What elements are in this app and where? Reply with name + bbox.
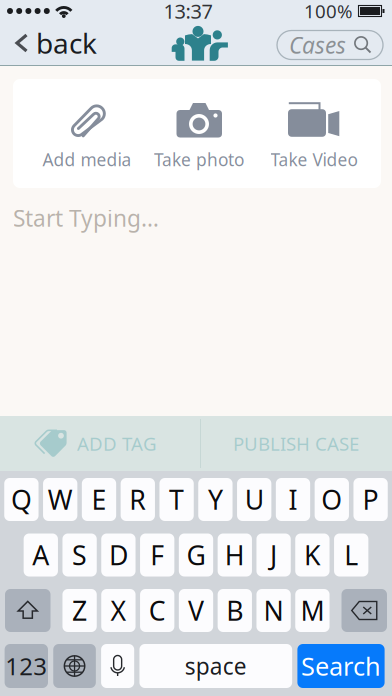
button[interactable]: Take photo xyxy=(161,101,237,169)
button[interactable]: Q xyxy=(4,478,38,521)
staticText: M xyxy=(300,593,324,628)
button[interactable]: Search xyxy=(297,644,385,688)
staticText: D xyxy=(109,537,128,573)
button[interactable]: 123 xyxy=(5,644,48,688)
button[interactable]: V xyxy=(179,589,213,632)
staticText: R xyxy=(129,482,146,517)
button[interactable]: Add media xyxy=(13,101,161,169)
staticText: W xyxy=(48,482,73,517)
button[interactable]: W xyxy=(43,478,77,521)
staticText: X xyxy=(110,593,126,628)
button[interactable]: E xyxy=(82,478,116,521)
button[interactable]: J xyxy=(256,533,291,576)
staticText: Cases xyxy=(289,30,346,60)
staticText: K xyxy=(304,537,321,573)
button[interactable]: G xyxy=(179,533,213,576)
button[interactable]: C xyxy=(140,589,174,632)
staticText: O xyxy=(321,482,342,517)
button[interactable]: Y xyxy=(198,478,232,521)
staticText: A xyxy=(32,537,49,573)
staticText: I xyxy=(288,482,297,517)
staticText: S xyxy=(72,537,87,573)
button[interactable]: O xyxy=(315,478,349,521)
button[interactable]: S xyxy=(62,533,97,576)
button[interactable]: U xyxy=(237,478,271,521)
button[interactable]: A xyxy=(24,533,58,576)
staticText: back xyxy=(36,24,97,62)
button[interactable]: Cases xyxy=(277,30,383,59)
staticText: 123 xyxy=(5,650,47,682)
button[interactable]: D xyxy=(101,533,135,576)
button[interactable]: Delete xyxy=(341,589,387,632)
button[interactable]: M xyxy=(295,589,329,632)
button[interactable]: Z xyxy=(62,589,97,632)
staticText: N xyxy=(264,593,284,628)
staticText: space xyxy=(185,651,247,681)
button[interactable]: P xyxy=(353,478,388,521)
button[interactable]: space xyxy=(139,644,292,688)
staticText: G xyxy=(186,537,205,573)
staticText: Search xyxy=(301,649,381,683)
staticText: J xyxy=(270,537,277,573)
staticText: Take Video xyxy=(270,148,357,171)
button[interactable]: I xyxy=(276,478,310,521)
staticText: V xyxy=(188,593,204,628)
staticText: C xyxy=(149,593,166,628)
staticText: 100% xyxy=(304,0,353,23)
staticText: Take photo xyxy=(154,148,244,171)
staticText: Z xyxy=(72,593,87,628)
staticText: ADD TAG xyxy=(77,431,157,456)
button[interactable]: Take Video xyxy=(237,101,381,169)
button[interactable]: Next keyboard xyxy=(53,644,96,688)
staticText: H xyxy=(225,537,245,573)
button[interactable]: Shift xyxy=(5,589,50,632)
staticText: Add media xyxy=(42,148,131,171)
button[interactable]: X xyxy=(101,589,135,632)
button[interactable]: K xyxy=(295,533,329,576)
button[interactable]: L xyxy=(334,533,368,576)
staticText: PUBLISH CASE xyxy=(233,431,359,456)
button[interactable]: PUBLISH CASE xyxy=(200,416,392,471)
staticText: 13:37 xyxy=(163,0,212,24)
button[interactable]: B xyxy=(218,589,252,632)
staticText: L xyxy=(344,537,358,573)
button[interactable]: back xyxy=(0,16,107,70)
button[interactable]: Dictate xyxy=(101,644,134,688)
staticText: Y xyxy=(208,482,223,517)
staticText: B xyxy=(226,593,243,628)
staticText: Q xyxy=(11,482,32,517)
button[interactable]: N xyxy=(256,589,291,632)
staticText: Start Typing… xyxy=(13,203,159,233)
button[interactable]: R xyxy=(121,478,155,521)
staticText: P xyxy=(363,482,379,517)
button[interactable]: H xyxy=(218,533,252,576)
button[interactable]: T xyxy=(159,478,194,521)
button[interactable]: F xyxy=(140,533,174,576)
staticText: U xyxy=(245,482,264,517)
staticText: F xyxy=(150,537,164,573)
staticText: E xyxy=(91,482,106,517)
staticText: T xyxy=(169,482,184,517)
button[interactable]: ADD TAG xyxy=(0,416,200,471)
